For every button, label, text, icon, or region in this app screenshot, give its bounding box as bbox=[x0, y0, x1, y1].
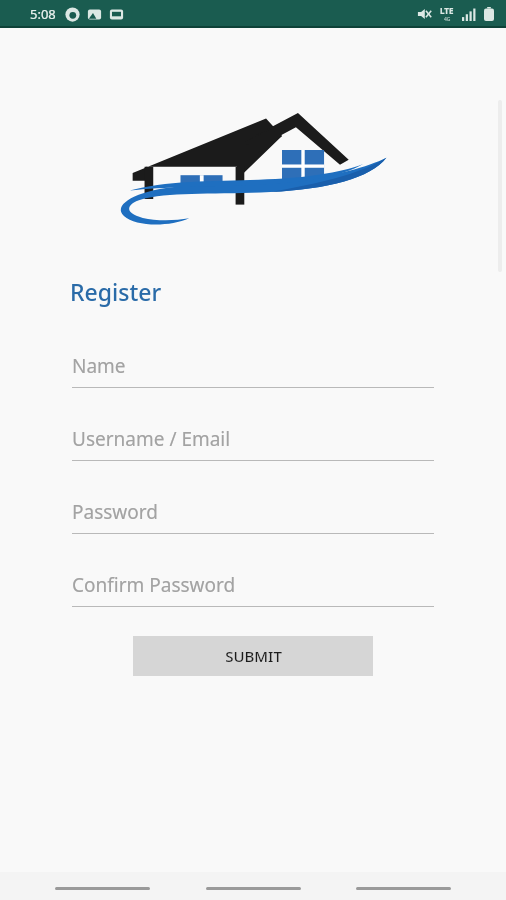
button[interactable]: Recents bbox=[55, 881, 150, 895]
button[interactable]: Back bbox=[356, 881, 451, 895]
staticText: Confirm Password bbox=[72, 572, 236, 598]
button[interactable]: Username / Email bbox=[72, 426, 434, 461]
staticText: SUBMIT bbox=[225, 646, 282, 666]
button[interactable]: Confirm Password bbox=[72, 572, 434, 607]
button[interactable]: Home bbox=[206, 881, 301, 895]
staticText: Name bbox=[72, 353, 126, 379]
staticText: 5:08 bbox=[30, 5, 56, 23]
button[interactable]: SUBMIT bbox=[133, 636, 373, 676]
staticText: LTE bbox=[440, 5, 454, 16]
button[interactable]: Name bbox=[72, 353, 434, 388]
button[interactable]: Password bbox=[72, 499, 434, 534]
staticText: Password bbox=[72, 499, 158, 525]
staticText: Username / Email bbox=[72, 426, 231, 452]
staticText: 4G bbox=[444, 16, 451, 23]
staticText: Register bbox=[70, 276, 162, 307]
